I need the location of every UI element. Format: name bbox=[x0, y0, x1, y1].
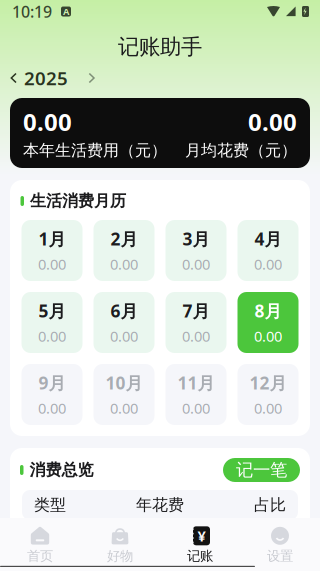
staticText: A bbox=[63, 5, 69, 18]
staticText: 1月 bbox=[38, 227, 65, 250]
button[interactable]: 10月 bbox=[93, 364, 154, 425]
staticText: 2025 bbox=[24, 66, 68, 90]
staticText: 11月 bbox=[177, 371, 214, 394]
staticText: 0.00 bbox=[254, 254, 282, 274]
button[interactable]: ¥ bbox=[160, 518, 240, 565]
staticText: 4月 bbox=[254, 227, 281, 250]
button[interactable]: 3月 bbox=[165, 220, 226, 281]
staticText: 占比 bbox=[254, 495, 286, 515]
staticText: 0.00 bbox=[182, 326, 210, 346]
button[interactable]: 1月 bbox=[21, 220, 82, 281]
staticText: 月均花费（元） bbox=[185, 141, 297, 160]
staticText: 记一笔 bbox=[236, 459, 287, 481]
staticText: 0.00 bbox=[110, 254, 138, 274]
button[interactable]: 2月 bbox=[93, 220, 154, 281]
staticText: 8月 bbox=[254, 299, 281, 322]
button[interactable]: 好物 bbox=[80, 518, 160, 565]
staticText: 0.00 bbox=[182, 254, 210, 274]
staticText: 0.00 bbox=[38, 326, 66, 346]
staticText: 7月 bbox=[182, 299, 209, 322]
button[interactable]: 4月 bbox=[237, 220, 298, 281]
staticText: 9月 bbox=[38, 371, 65, 394]
button[interactable]: Next year bbox=[82, 69, 102, 87]
staticText: 年花费 bbox=[136, 495, 184, 515]
staticText: 0.00 bbox=[254, 398, 282, 418]
button[interactable]: 首页 bbox=[0, 518, 80, 565]
staticText: 0.00 bbox=[38, 398, 66, 418]
staticText: 0.00 bbox=[38, 254, 66, 274]
button[interactable]: 设置 bbox=[240, 518, 320, 565]
staticText: 0.00 bbox=[110, 398, 138, 418]
button[interactable]: 9月 bbox=[21, 364, 82, 425]
staticText: 0.00 bbox=[182, 398, 210, 418]
staticText: 2月 bbox=[110, 227, 137, 250]
staticText: 3月 bbox=[182, 227, 209, 250]
staticText: 本年生活费用（元） bbox=[23, 141, 167, 160]
staticText: 0.00 bbox=[254, 326, 282, 346]
staticText: 记账 bbox=[187, 548, 213, 564]
staticText: 12月 bbox=[249, 371, 286, 394]
staticText: 0.00 bbox=[23, 106, 72, 138]
staticText: 记账助手 bbox=[118, 34, 202, 60]
staticText: 生活消费月历 bbox=[30, 191, 126, 211]
staticText: 类型 bbox=[34, 495, 66, 515]
staticText: 10月 bbox=[105, 371, 142, 394]
button[interactable]: 11月 bbox=[165, 364, 226, 425]
staticText: ¥ bbox=[197, 526, 205, 546]
button[interactable]: 记一笔 bbox=[223, 458, 300, 482]
button[interactable]: 6月 bbox=[93, 292, 154, 353]
staticText: 0.00 bbox=[248, 106, 297, 138]
staticText: 10:19 bbox=[12, 1, 52, 22]
button[interactable]: 8月 bbox=[237, 292, 298, 353]
staticText: 首页 bbox=[27, 548, 53, 564]
button[interactable]: 12月 bbox=[237, 364, 298, 425]
staticText: 消费总览 bbox=[29, 460, 93, 480]
staticText: 设置 bbox=[267, 548, 293, 564]
staticText: 0.00 bbox=[110, 326, 138, 346]
staticText: 5月 bbox=[38, 299, 65, 322]
button[interactable]: 7月 bbox=[165, 292, 226, 353]
staticText: 6月 bbox=[110, 299, 137, 322]
button[interactable]: 5月 bbox=[21, 292, 82, 353]
button[interactable]: Previous year bbox=[4, 69, 24, 87]
staticText: 好物 bbox=[107, 548, 133, 564]
